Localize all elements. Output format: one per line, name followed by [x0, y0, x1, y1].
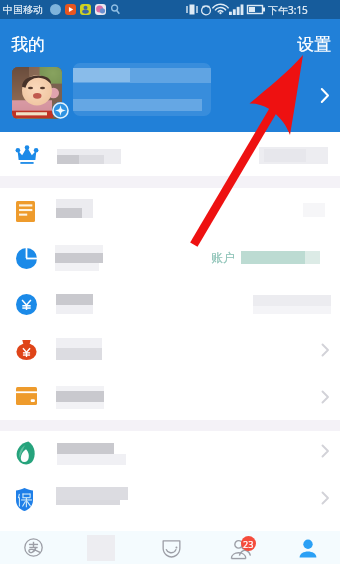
button[interactable]: Alipay home	[0, 531, 66, 564]
button[interactable]	[0, 188, 340, 235]
staticText: 中国移动	[3, 3, 43, 16]
button[interactable]	[0, 373, 340, 419]
button[interactable]	[0, 282, 340, 326]
button[interactable]: My profile	[276, 531, 340, 564]
button[interactable]	[0, 430, 340, 476]
button[interactable]: 设置	[288, 34, 340, 55]
button[interactable]	[0, 132, 340, 177]
button[interactable]: Discover	[66, 531, 136, 564]
staticText: 下午3:15	[268, 3, 308, 17]
staticText: 设置	[297, 34, 331, 55]
button[interactable]: Koubei	[136, 531, 206, 564]
button[interactable]	[0, 326, 340, 373]
staticText: 23	[243, 538, 254, 550]
button[interactable]	[0, 63, 340, 127]
button[interactable]	[0, 476, 340, 522]
staticText: 账户	[211, 250, 235, 265]
button[interactable]	[0, 235, 340, 282]
staticText: 我的	[11, 34, 45, 55]
button[interactable]: Friends	[206, 531, 276, 564]
